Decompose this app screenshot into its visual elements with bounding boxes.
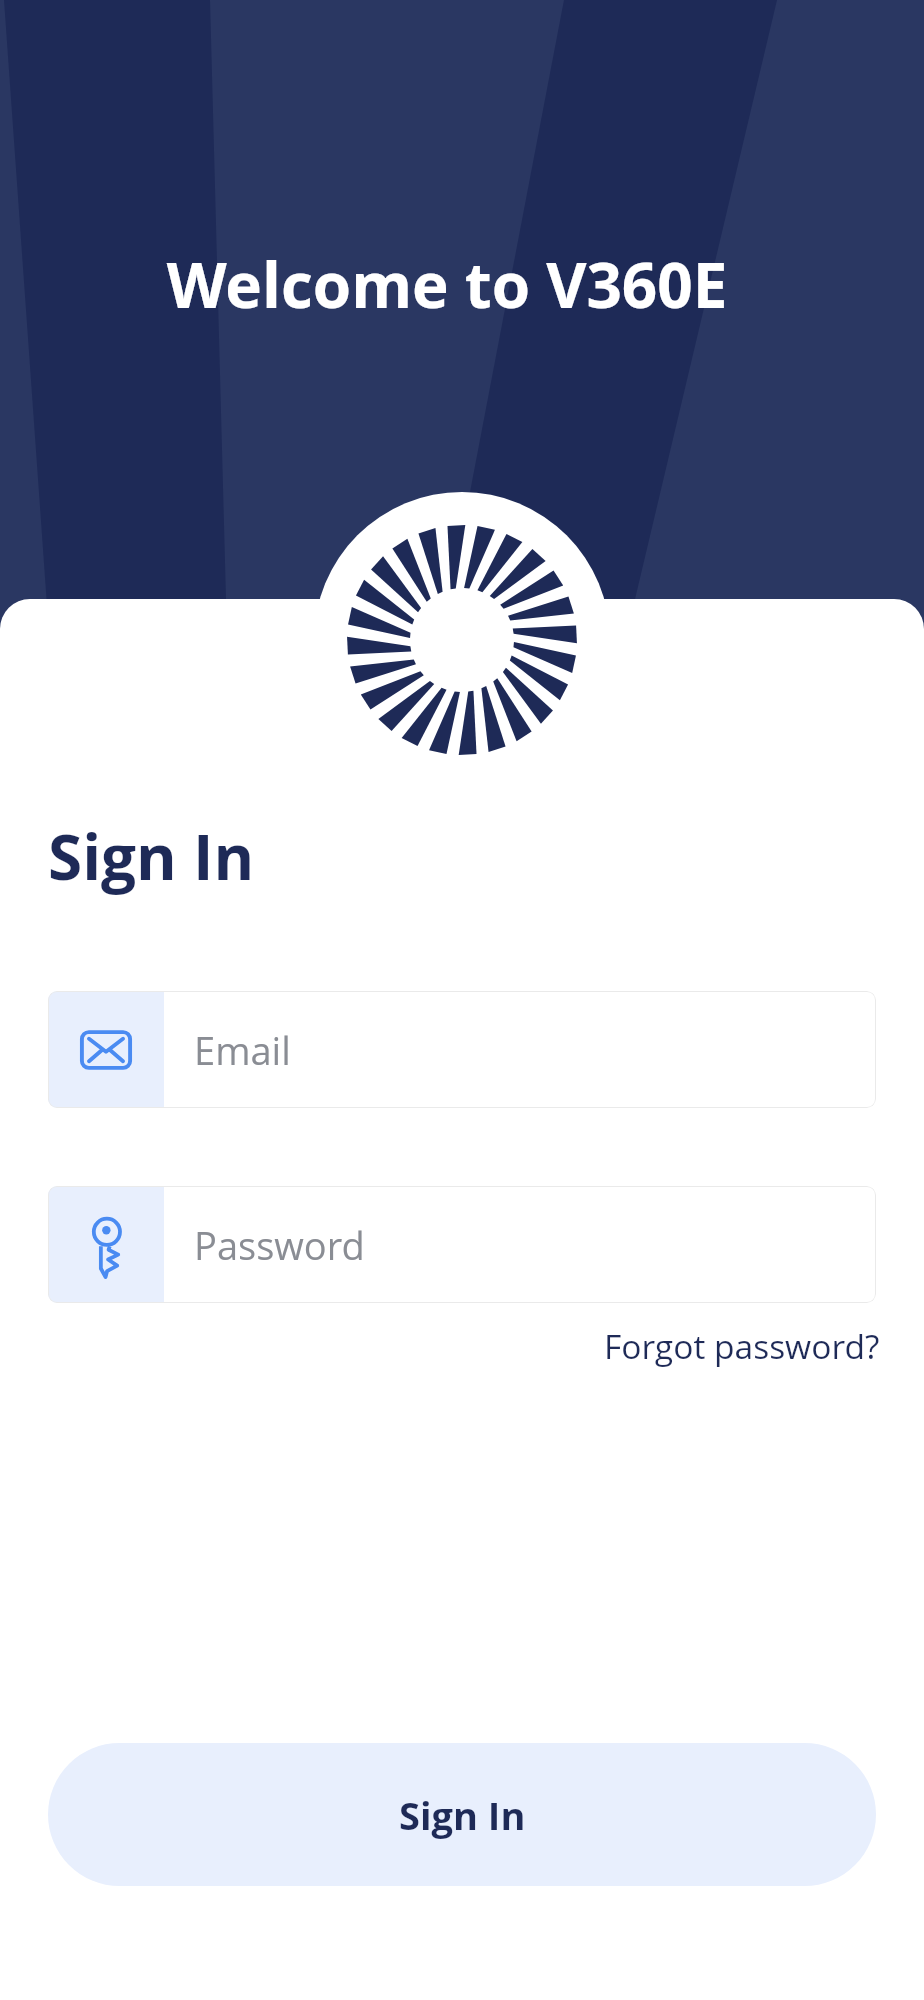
button[interactable]: Password [48,1186,876,1303]
staticText: Email [194,1024,291,1076]
button[interactable]: Sign In [48,1743,876,1886]
staticText: Forgot password? [604,1323,880,1369]
other: Password [48,1186,164,1303]
staticText: Sign In [399,1789,526,1841]
other: Email [48,991,164,1108]
staticText: Password [194,1219,365,1271]
staticText: Welcome to V360E [0,242,909,326]
button[interactable]: Email [48,991,876,1108]
button[interactable]: Forgot password? [604,1323,880,1369]
staticText: Sign In [48,814,255,898]
